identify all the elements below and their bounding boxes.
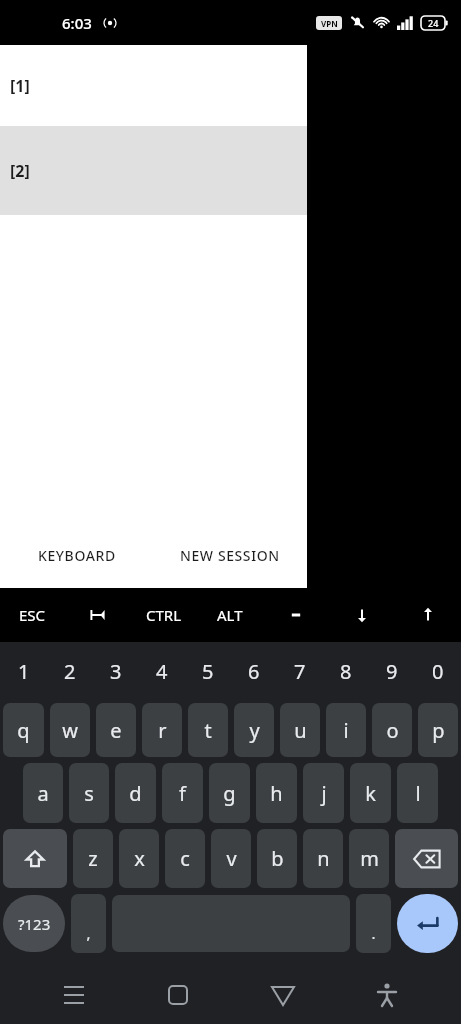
button[interactable]: s bbox=[69, 763, 109, 823]
button[interactable]: n bbox=[303, 829, 343, 888]
staticText: 3 bbox=[110, 658, 122, 685]
button[interactable]: Accessibility bbox=[357, 965, 417, 1024]
button[interactable]: j bbox=[303, 763, 344, 823]
button[interactable]: . bbox=[356, 894, 391, 953]
button[interactable]: [2] bbox=[0, 126, 307, 215]
staticText: k bbox=[365, 780, 376, 807]
button[interactable]: m bbox=[349, 829, 389, 888]
button[interactable]: Minus bbox=[263, 588, 329, 642]
staticText: y bbox=[249, 717, 260, 744]
button[interactable]: u bbox=[280, 703, 320, 757]
staticText: NEW SESSION bbox=[180, 546, 280, 565]
button[interactable]: Arrow down bbox=[329, 588, 395, 642]
button[interactable]: 3 bbox=[93, 642, 139, 700]
staticText: r bbox=[158, 717, 167, 744]
button[interactable]: Back bbox=[253, 965, 313, 1024]
button[interactable]: Home bbox=[148, 965, 208, 1024]
button[interactable]: ALT bbox=[197, 588, 263, 642]
button[interactable]: h bbox=[256, 763, 297, 823]
staticText: 6:03 bbox=[62, 13, 92, 33]
button[interactable]: ?123 bbox=[3, 895, 65, 952]
staticText: c bbox=[180, 845, 190, 872]
staticText: l bbox=[415, 780, 421, 807]
button[interactable]: [1] bbox=[0, 45, 307, 126]
button[interactable]: 8 bbox=[323, 642, 369, 700]
staticText: n bbox=[317, 845, 330, 872]
staticText: 4 bbox=[156, 658, 168, 685]
button[interactable]: b bbox=[257, 829, 297, 888]
button[interactable]: ESC bbox=[0, 588, 65, 642]
button[interactable]: 7 bbox=[277, 642, 323, 700]
button[interactable]: Shift bbox=[3, 829, 67, 888]
button[interactable]: 9 bbox=[369, 642, 415, 700]
button[interactable]: NEW SESSION bbox=[153, 528, 307, 582]
button[interactable]: o bbox=[372, 703, 412, 757]
button[interactable]: Menu bbox=[44, 965, 104, 1024]
staticText: i bbox=[343, 717, 349, 744]
button[interactable]: 4 bbox=[139, 642, 185, 700]
button[interactable]: p bbox=[418, 703, 458, 757]
button[interactable]: a bbox=[23, 763, 63, 823]
staticText: g bbox=[223, 780, 236, 807]
staticText: 8 bbox=[340, 658, 352, 685]
staticText: ?123 bbox=[18, 914, 51, 934]
staticText: 1 bbox=[18, 658, 30, 685]
button[interactable]: r bbox=[142, 703, 182, 757]
button[interactable]: 0 bbox=[415, 642, 461, 700]
staticText: t bbox=[204, 717, 212, 744]
button[interactable]: Enter bbox=[397, 894, 458, 953]
staticText: d bbox=[129, 780, 142, 807]
staticText: CTRL bbox=[146, 605, 182, 625]
button[interactable]: g bbox=[209, 763, 250, 823]
button[interactable]: d bbox=[115, 763, 156, 823]
button[interactable]: Arrow up bbox=[395, 588, 461, 642]
staticText: [1] bbox=[10, 75, 30, 97]
staticText: 9 bbox=[386, 658, 398, 685]
staticText: w bbox=[62, 717, 78, 744]
staticText: q bbox=[17, 717, 30, 744]
staticText: m bbox=[360, 845, 379, 872]
button[interactable]: q bbox=[3, 703, 44, 757]
staticText: 24 bbox=[428, 17, 439, 29]
staticText: ESC bbox=[19, 605, 46, 625]
button[interactable]: , bbox=[71, 894, 106, 953]
staticText: ALT bbox=[217, 605, 243, 625]
staticText: s bbox=[84, 780, 94, 807]
button[interactable]: v bbox=[211, 829, 251, 888]
button[interactable]: x bbox=[119, 829, 159, 888]
staticText: 5 bbox=[202, 658, 214, 685]
button[interactable]: 2 bbox=[47, 642, 93, 700]
button[interactable]: z bbox=[73, 829, 113, 888]
button[interactable]: KEYBOARD bbox=[0, 528, 153, 582]
staticText: a bbox=[37, 780, 49, 807]
staticText: z bbox=[88, 845, 98, 872]
staticText: h bbox=[270, 780, 283, 807]
button[interactable]: 5 bbox=[185, 642, 231, 700]
button[interactable]: Backspace bbox=[395, 829, 458, 888]
button[interactable]: t bbox=[188, 703, 228, 757]
button[interactable]: 6 bbox=[231, 642, 277, 700]
button[interactable]: l bbox=[397, 763, 438, 823]
button[interactable]: CTRL bbox=[131, 588, 197, 642]
button[interactable]: y bbox=[234, 703, 274, 757]
staticText: o bbox=[386, 717, 399, 744]
button[interactable]: c bbox=[165, 829, 205, 888]
staticText: e bbox=[110, 717, 122, 744]
staticText: f bbox=[179, 780, 186, 807]
staticText: 2 bbox=[64, 658, 76, 685]
staticText: b bbox=[271, 845, 284, 872]
staticText: j bbox=[321, 780, 327, 807]
staticText: u bbox=[294, 717, 307, 744]
button[interactable]: Tab bbox=[65, 588, 131, 642]
button[interactable]: 1 bbox=[0, 642, 47, 700]
button[interactable]: i bbox=[326, 703, 366, 757]
staticText: KEYBOARD bbox=[38, 546, 116, 565]
button[interactable]: e bbox=[96, 703, 136, 757]
button[interactable]: f bbox=[162, 763, 203, 823]
staticText: . bbox=[371, 923, 376, 943]
button[interactable]: k bbox=[350, 763, 391, 823]
staticText: , bbox=[86, 923, 91, 943]
button[interactable]: w bbox=[50, 703, 90, 757]
staticText: 0 bbox=[432, 658, 444, 685]
